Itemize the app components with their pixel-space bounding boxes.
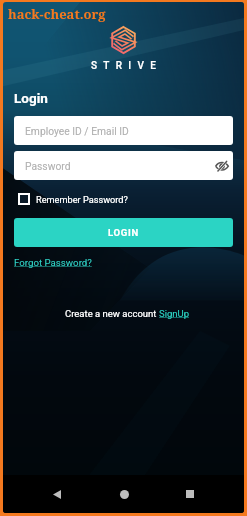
staticText: Employee ID / Email ID (25, 125, 129, 137)
button[interactable]: Remember Password? (18, 193, 128, 205)
staticText: Remember Password? (36, 194, 128, 205)
button[interactable]: Show password (214, 158, 230, 174)
staticText: Login (14, 90, 48, 106)
staticText: Password (25, 160, 71, 172)
button[interactable]: Password (14, 151, 233, 180)
button[interactable]: LOGIN (14, 218, 233, 247)
button[interactable]: Forgot Password? (14, 257, 92, 268)
button[interactable]: SignUp (159, 308, 190, 319)
button[interactable]: Back (44, 481, 70, 507)
staticText: hack-cheat.org (8, 5, 106, 23)
button[interactable]: Home (111, 481, 137, 507)
staticText: LOGIN (108, 227, 139, 238)
button[interactable]: Employee ID / Email ID (14, 116, 233, 145)
button[interactable]: Recents (177, 481, 203, 507)
staticText: Create a new account (65, 308, 159, 319)
staticText: STRIVE (91, 60, 163, 72)
